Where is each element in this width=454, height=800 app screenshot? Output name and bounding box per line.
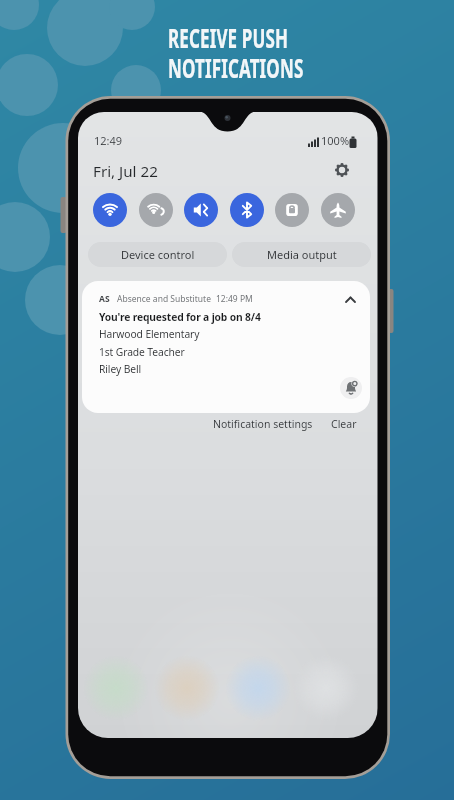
staticText: Clear <box>331 417 357 431</box>
staticText: 12:49 PM <box>216 293 253 305</box>
staticText: 100% <box>321 133 350 148</box>
button[interactable] <box>139 193 173 227</box>
staticText: Notification settings <box>213 417 313 431</box>
button[interactable] <box>93 193 127 227</box>
button[interactable]: Device control <box>88 242 227 267</box>
staticText: AS <box>99 293 110 305</box>
staticText: RECEIVE PUSH NOTIFICATIONS <box>168 19 303 86</box>
staticText: Harwood Elementary <box>99 327 200 341</box>
button[interactable]: Notification settings <box>207 414 319 434</box>
staticText: Absence and Substitute <box>117 293 211 305</box>
button[interactable]: Clear <box>322 414 366 434</box>
staticText: Riley Bell <box>99 362 142 376</box>
button[interactable]: Media output <box>232 242 371 267</box>
button[interactable] <box>184 193 218 227</box>
button[interactable] <box>230 193 264 227</box>
button[interactable] <box>275 193 309 227</box>
staticText: 1st Grade Teacher <box>99 345 185 359</box>
staticText: You're requested for a job on 8/4 <box>99 310 261 324</box>
staticText: Device control <box>121 247 195 262</box>
staticText: 12:49 <box>94 133 123 148</box>
button[interactable]: AS <box>82 281 370 413</box>
button[interactable] <box>334 162 351 179</box>
staticText: Fri, Jul 22 <box>93 161 158 182</box>
staticText: Media output <box>267 247 337 262</box>
button[interactable] <box>321 193 355 227</box>
